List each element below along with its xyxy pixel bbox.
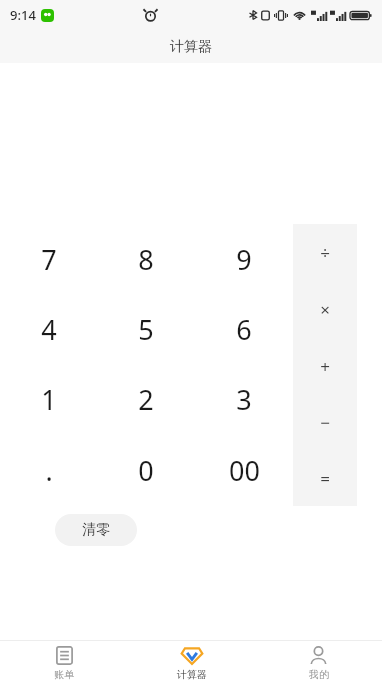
button[interactable]: ÷	[293, 224, 357, 281]
staticText: 计算器	[170, 38, 212, 56]
staticText: −	[320, 411, 330, 434]
staticText: .	[45, 452, 53, 489]
button[interactable]: 账单	[0, 641, 128, 686]
other: 我的	[309, 646, 328, 665]
staticText: 9	[236, 241, 252, 278]
staticText: 6	[236, 311, 252, 348]
button[interactable]: 00	[195, 435, 293, 506]
button[interactable]: 2	[97, 364, 195, 435]
staticText: +	[320, 355, 330, 378]
button[interactable]: −	[293, 394, 357, 450]
staticText: =	[320, 467, 330, 490]
button[interactable]: 3	[195, 364, 293, 435]
button[interactable]: ×	[293, 281, 357, 338]
staticText: 5	[138, 311, 154, 348]
button[interactable]: 8	[97, 224, 195, 294]
button[interactable]: 清零	[55, 514, 137, 546]
staticText: 7	[41, 241, 57, 278]
staticText: 0	[138, 452, 154, 489]
button[interactable]: 5	[97, 294, 195, 364]
button[interactable]: +	[293, 338, 357, 394]
button[interactable]: 6	[195, 294, 293, 364]
button[interactable]: 我的	[255, 641, 382, 686]
staticText: 9:14	[10, 6, 36, 24]
button[interactable]: 4	[0, 294, 97, 364]
staticText: 计算器	[177, 668, 207, 681]
button[interactable]: =	[293, 450, 357, 506]
staticText: 8	[138, 241, 154, 278]
other: 账单	[55, 646, 74, 665]
other: 计算器	[181, 646, 203, 665]
button[interactable]: 计算器	[128, 641, 255, 686]
staticText: 3	[236, 381, 252, 418]
staticText: ×	[320, 298, 330, 321]
button[interactable]: 1	[0, 364, 97, 435]
staticText: 清零	[82, 521, 110, 539]
staticText: 账单	[54, 668, 74, 681]
staticText: 00	[229, 452, 260, 489]
button[interactable]: .	[0, 435, 97, 506]
staticText: 2	[138, 381, 154, 418]
staticText: 4	[41, 311, 57, 348]
staticText: 我的	[309, 668, 329, 681]
button[interactable]: 0	[97, 435, 195, 506]
button[interactable]: 9	[195, 224, 293, 294]
staticText: 1	[41, 381, 57, 418]
staticText: ÷	[320, 241, 330, 264]
button[interactable]: 7	[0, 224, 97, 294]
